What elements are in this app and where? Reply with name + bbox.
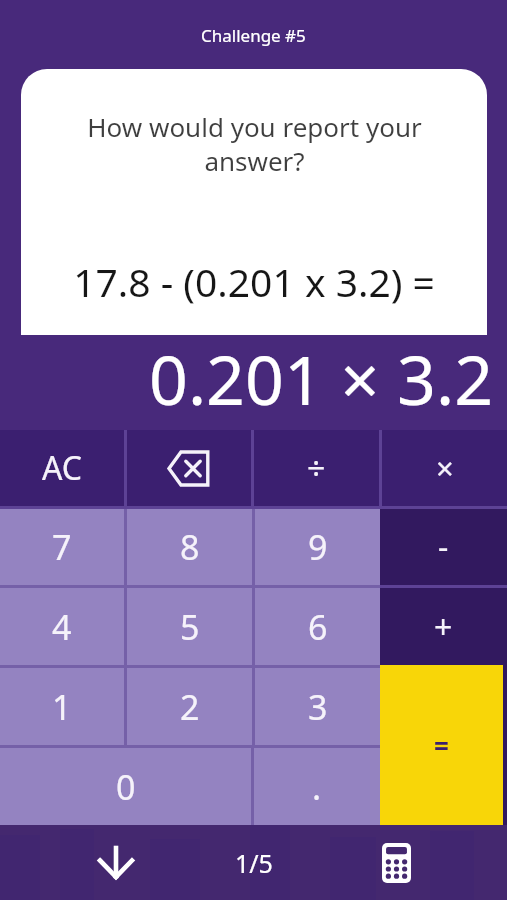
staticText: How would you report your answer?: [87, 109, 422, 178]
staticText: 1/5: [235, 846, 273, 880]
button[interactable]: 2: [127, 668, 252, 745]
button[interactable]: ÷: [254, 430, 379, 506]
staticText: ×: [436, 447, 454, 489]
button[interactable]: ×: [382, 430, 507, 506]
staticText: =: [434, 728, 449, 763]
staticText: 8: [180, 524, 200, 570]
staticText: 0: [116, 764, 136, 810]
staticText: 2: [180, 684, 200, 730]
button[interactable]: [127, 430, 251, 506]
button[interactable]: 9: [255, 509, 380, 585]
button[interactable]: 6: [255, 588, 380, 665]
button[interactable]: 7: [0, 509, 124, 585]
staticText: .: [312, 764, 322, 810]
button[interactable]: [376, 843, 416, 883]
button[interactable]: 0: [0, 748, 251, 825]
button[interactable]: .: [254, 748, 380, 825]
button[interactable]: +: [380, 588, 507, 665]
staticText: 6: [308, 604, 328, 650]
staticText: 4: [52, 604, 72, 650]
button[interactable]: 1: [0, 668, 124, 745]
staticText: Challenge #5: [201, 24, 306, 47]
staticText: 17.8 - (0.201 x 3.2) =: [73, 255, 435, 308]
staticText: +: [434, 605, 453, 649]
staticText: 7: [52, 524, 72, 570]
button[interactable]: 4: [0, 588, 124, 665]
staticText: 1: [52, 684, 72, 730]
button[interactable]: 5: [127, 588, 252, 665]
staticText: -: [438, 525, 449, 569]
button[interactable]: =: [380, 665, 503, 825]
staticText: 9: [308, 524, 328, 570]
button[interactable]: 3: [255, 668, 380, 745]
staticText: 0.201 × 3.2: [149, 332, 494, 425]
staticText: 3: [308, 684, 328, 730]
staticText: AC: [42, 446, 83, 490]
staticText: 5: [180, 604, 200, 650]
staticText: ÷: [307, 446, 326, 490]
button[interactable]: AC: [0, 430, 124, 506]
button[interactable]: 8: [127, 509, 252, 585]
button[interactable]: -: [380, 509, 507, 585]
button[interactable]: [96, 843, 136, 883]
